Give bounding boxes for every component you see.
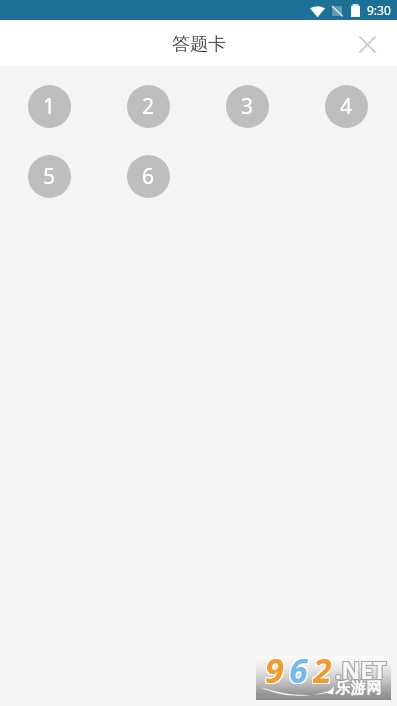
- staticText: 6: [290, 648, 309, 692]
- button[interactable]: 3: [226, 85, 269, 128]
- staticText: 6: [288, 646, 307, 690]
- staticText: 9: [265, 647, 284, 691]
- staticText: 3: [241, 92, 254, 121]
- staticText: 乐游网: [334, 680, 382, 699]
- staticText: 乐游网: [335, 679, 383, 698]
- staticText: 2: [142, 92, 155, 121]
- staticText: 6: [288, 648, 307, 692]
- staticText: 2: [313, 647, 332, 691]
- button[interactable]: 2: [127, 85, 170, 128]
- staticText: 6: [289, 647, 308, 691]
- staticText: 9:30: [367, 2, 391, 18]
- staticText: 9: [264, 648, 283, 692]
- staticText: 9: [266, 646, 285, 690]
- staticText: .NET: [334, 655, 386, 686]
- staticText: .NET: [336, 655, 388, 686]
- staticText: 1: [43, 92, 56, 121]
- staticText: 乐游网: [336, 680, 384, 699]
- staticText: 2: [312, 646, 331, 690]
- staticText: .NET: [335, 654, 387, 685]
- button[interactable]: 5: [28, 155, 71, 198]
- staticText: 乐游网: [336, 678, 384, 697]
- staticText: 2: [312, 648, 331, 692]
- button[interactable]: Close: [350, 27, 384, 61]
- staticText: 2: [314, 648, 333, 692]
- button[interactable]: 1: [28, 85, 71, 128]
- staticText: 5: [43, 162, 56, 191]
- staticText: 9: [264, 646, 283, 690]
- button[interactable]: 6: [127, 155, 170, 198]
- staticText: 4: [340, 92, 353, 121]
- staticText: 2: [314, 646, 333, 690]
- staticText: .NET: [334, 653, 386, 684]
- button[interactable]: 4: [325, 85, 368, 128]
- staticText: 乐游网: [334, 678, 382, 697]
- staticText: 6: [290, 646, 309, 690]
- staticText: 答题卡: [172, 33, 226, 56]
- staticText: 6: [142, 162, 155, 191]
- staticText: 9: [266, 648, 285, 692]
- staticText: .NET: [336, 653, 388, 684]
